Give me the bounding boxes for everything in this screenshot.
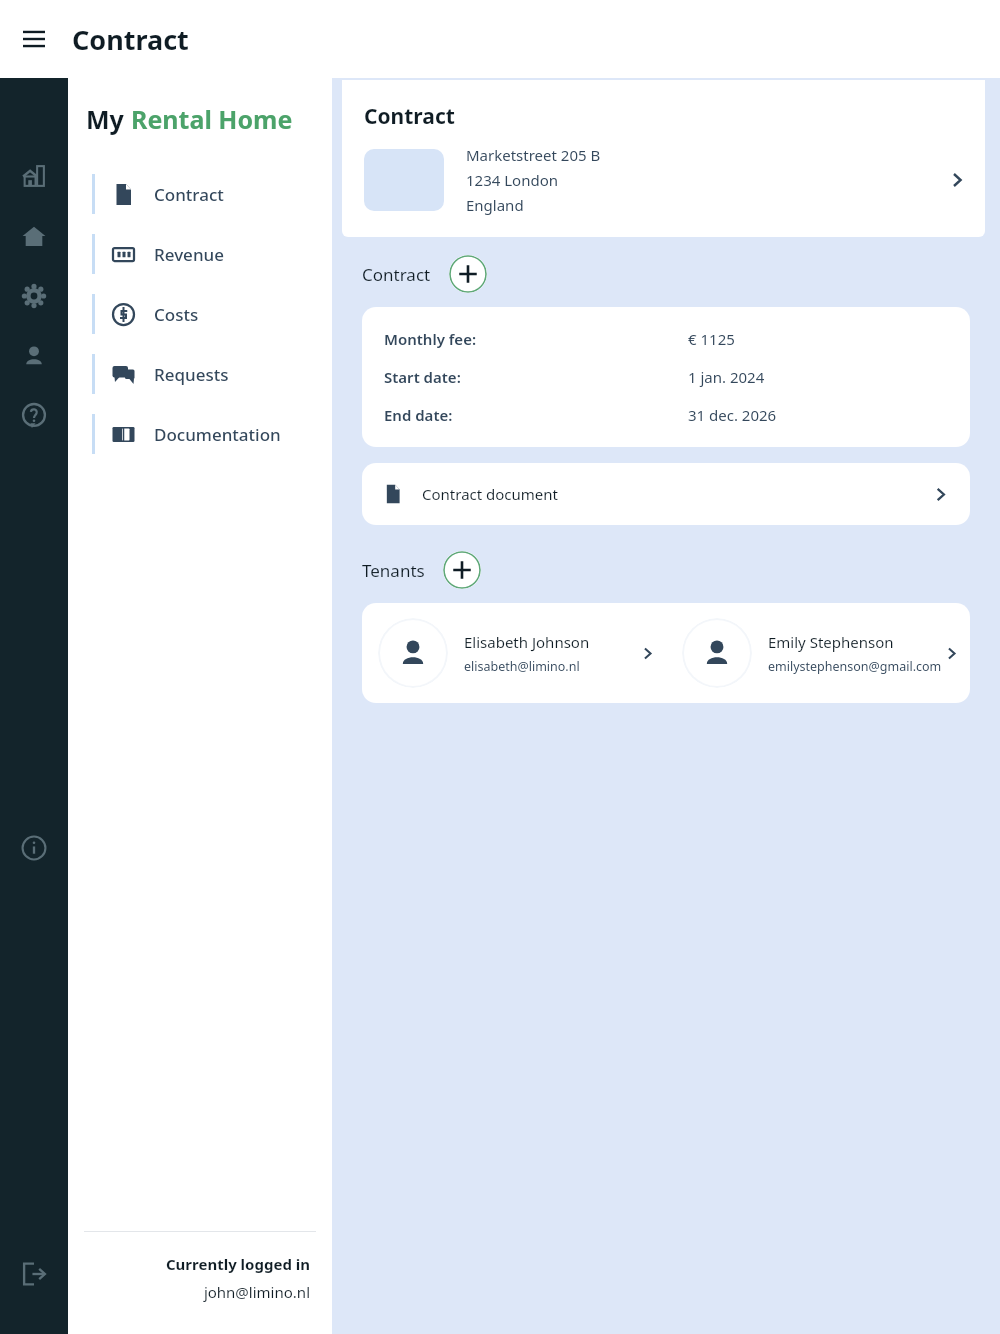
staticText: England — [466, 195, 524, 215]
staticText: € 1125 — [688, 329, 735, 349]
staticText: Rental Home — [131, 102, 293, 136]
button[interactable]: Menu — [10, 15, 58, 63]
button[interactable]: Contract — [342, 80, 985, 237]
staticText: End date: — [384, 405, 453, 425]
staticText: Requests — [154, 363, 229, 386]
staticText: Marketstreet 205 B — [466, 145, 601, 165]
button[interactable]: Revenue — [68, 224, 332, 284]
button[interactable]: Profile — [4, 326, 64, 386]
button[interactable]: Add Contract — [449, 255, 487, 293]
staticText: 1 jan. 2024 — [688, 367, 765, 387]
staticText: 31 dec. 2026 — [688, 405, 777, 425]
button[interactable]: Costs — [68, 284, 332, 344]
staticText: Monthly fee: — [384, 329, 477, 349]
staticText: Documentation — [154, 423, 281, 446]
staticText: Emily Stephenson — [768, 632, 894, 652]
button[interactable]: Info — [4, 818, 64, 878]
staticText: Elisabeth Johnson — [464, 632, 590, 652]
staticText: Tenants — [362, 559, 425, 582]
staticText: Start date: — [384, 367, 461, 387]
button[interactable]: Help — [4, 386, 64, 446]
button[interactable]: Add Tenants — [443, 551, 481, 589]
button[interactable]: Contract — [68, 164, 332, 224]
staticText: Costs — [154, 303, 199, 326]
staticText: Contract — [364, 102, 455, 131]
button[interactable]: Contract document — [362, 463, 970, 525]
button[interactable]: Documentation — [68, 404, 332, 464]
button[interactable]: Home — [4, 206, 64, 266]
button[interactable]: Settings — [4, 266, 64, 326]
staticText: My — [86, 102, 131, 136]
staticText: Contract — [362, 263, 431, 286]
button[interactable]: Properties — [4, 146, 64, 206]
staticText: emilystephenson@gmail.com — [768, 658, 942, 675]
staticText: Currently logged in — [68, 1254, 310, 1274]
button[interactable]: Requests — [68, 344, 332, 404]
button[interactable]: Log out — [4, 1244, 64, 1304]
staticText: john@limino.nl — [68, 1282, 310, 1302]
button[interactable]: Elisabeth Johnson — [362, 603, 666, 703]
button[interactable]: Emily Stephenson — [666, 603, 970, 703]
staticText: 1234 London — [466, 170, 558, 190]
staticText: elisabeth@limino.nl — [464, 658, 580, 675]
staticText: Contract — [154, 183, 224, 206]
staticText: Contract document — [422, 484, 559, 504]
staticText: Contract — [72, 21, 189, 58]
staticText: Revenue — [154, 243, 224, 266]
